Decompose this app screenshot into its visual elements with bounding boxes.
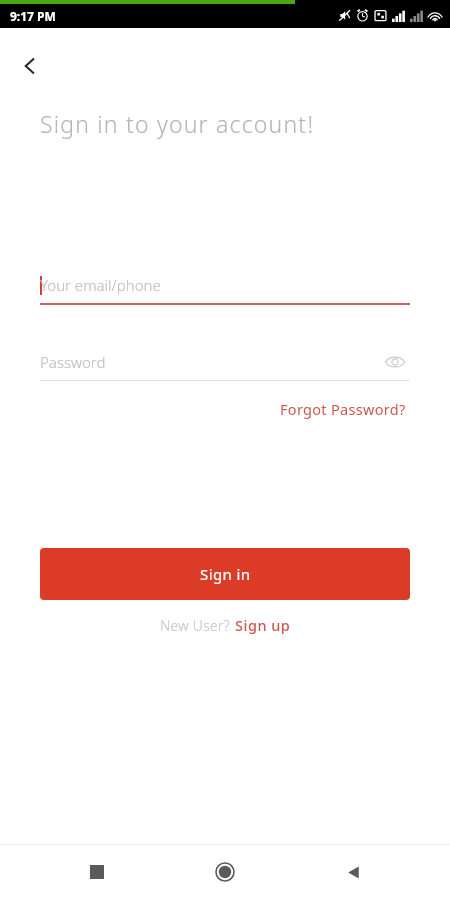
staticText: Forgot Password? (280, 399, 406, 419)
button[interactable]: Back (8, 44, 52, 88)
button[interactable]: Sign in (40, 548, 410, 600)
staticText: Your email/phone (40, 275, 161, 295)
staticText: Sign in to your account! (40, 108, 315, 139)
button[interactable]: Your email/phone (40, 267, 410, 303)
staticText: Sign up (235, 615, 291, 635)
staticText: Sign in (200, 564, 251, 584)
button[interactable]: Recent apps (73, 848, 121, 896)
staticText: 9:17 PM (10, 8, 56, 24)
button[interactable]: Password (40, 344, 410, 380)
button[interactable]: Back (329, 848, 377, 896)
button[interactable]: Forgot Password? (276, 395, 410, 423)
button[interactable]: Home (201, 848, 249, 896)
staticText: Password (40, 352, 106, 372)
button[interactable]: Sign up (235, 615, 291, 635)
button[interactable]: Show password (380, 347, 410, 377)
staticText: New User? (160, 616, 235, 635)
